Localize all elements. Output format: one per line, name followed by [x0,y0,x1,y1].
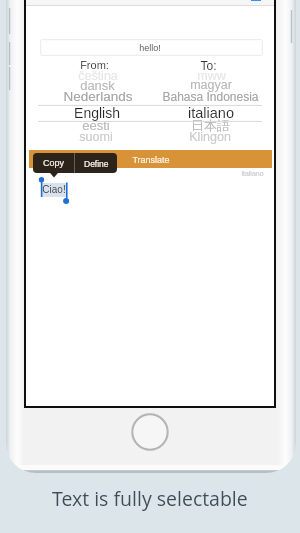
staticText: From: [80,59,109,71]
staticText: Copy [43,158,65,168]
staticText: eesti [82,118,110,133]
button[interactable] [40,39,263,56]
staticText: English [74,105,120,121]
staticText: italiano [188,105,234,121]
button[interactable]: Copy [33,153,74,173]
staticText: magyar [190,78,232,92]
staticText: 日本語 [191,117,230,133]
staticText: Klingon [189,130,231,144]
staticText: dansk [80,78,115,93]
staticText: To: [200,59,217,72]
staticText: Define [84,159,109,168]
staticText: mww [197,69,226,83]
staticText: Text is fully selectable [52,485,248,512]
staticText: Bahasa Indonesia [162,90,259,103]
staticText: italiano [241,170,264,178]
button[interactable] [29,150,272,168]
staticText: Nederlands [63,89,133,104]
staticText: hello! [139,43,161,53]
staticText: Translate [132,155,170,165]
staticText: čeština [78,69,118,83]
button[interactable]: Define [75,153,117,173]
button[interactable]: Home [132,414,168,450]
staticText: Ciao! [42,184,66,195]
staticText: suomi [79,130,113,144]
